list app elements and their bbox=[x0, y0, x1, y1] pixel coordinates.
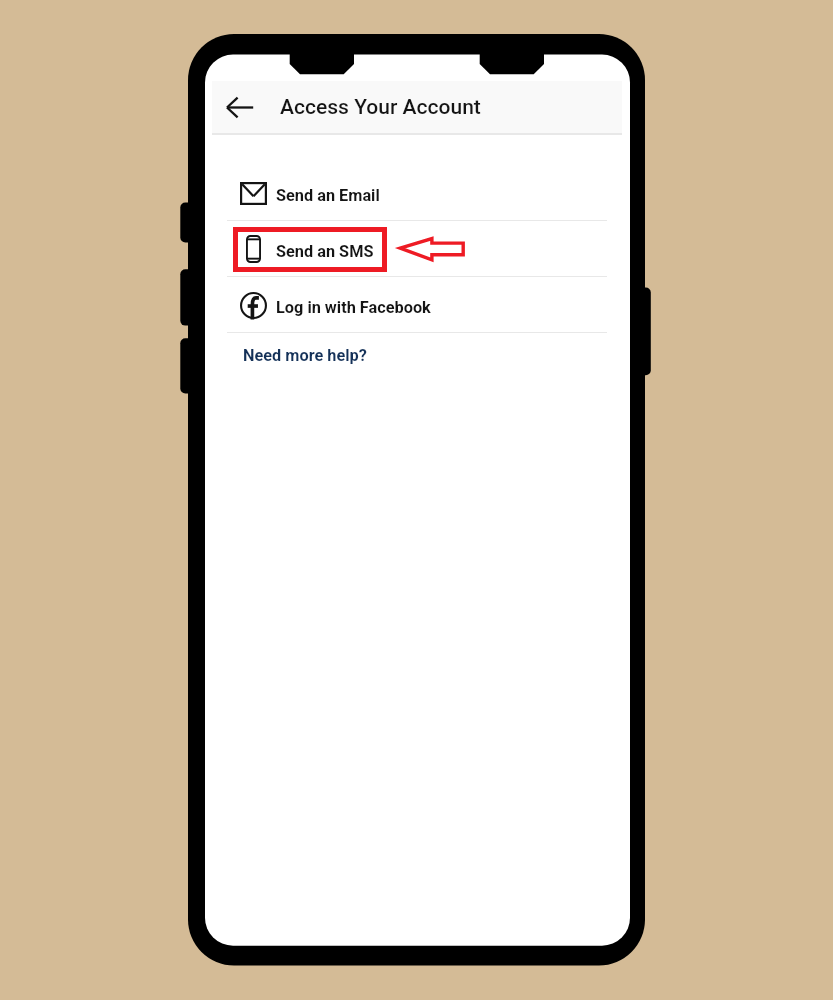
button[interactable]: Back bbox=[217, 84, 263, 130]
staticText: Log in with Facebook bbox=[276, 298, 431, 317]
button[interactable]: Send an SMS bbox=[205, 221, 630, 276]
staticText: Send an SMS bbox=[276, 242, 374, 261]
staticText: Send an Email bbox=[276, 186, 380, 205]
button[interactable]: Send an Email bbox=[205, 165, 630, 220]
button[interactable]: Need more help? bbox=[243, 333, 375, 375]
staticText: Need more help? bbox=[243, 346, 367, 365]
button[interactable]: Log in with Facebook bbox=[205, 277, 630, 332]
staticText: Access Your Account bbox=[280, 95, 481, 120]
